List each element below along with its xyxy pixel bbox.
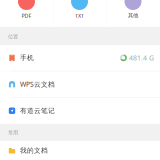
button[interactable]: PDF: [0, 0, 53, 27]
staticText: WPS云文档: [20, 80, 55, 89]
staticText: TXT: [75, 12, 84, 19]
staticText: 我的文档: [20, 146, 48, 155]
staticText: PDF: [21, 12, 31, 19]
staticText: 手机: [20, 54, 34, 62]
button[interactable]: TXT: [53, 0, 106, 27]
staticText: 位置: [8, 33, 18, 40]
staticText: 有道云笔记: [20, 107, 55, 115]
button[interactable]: 我的文档: [0, 141, 160, 160]
button[interactable]: WPS云文档: [0, 71, 160, 98]
staticText: 481.4 G: [129, 53, 154, 62]
button[interactable]: 有道云笔记: [0, 98, 160, 124]
button[interactable]: 手机: [0, 45, 160, 71]
staticText: 其他: [128, 12, 138, 19]
staticText: 常用: [8, 129, 18, 136]
button[interactable]: 其他: [106, 0, 160, 27]
